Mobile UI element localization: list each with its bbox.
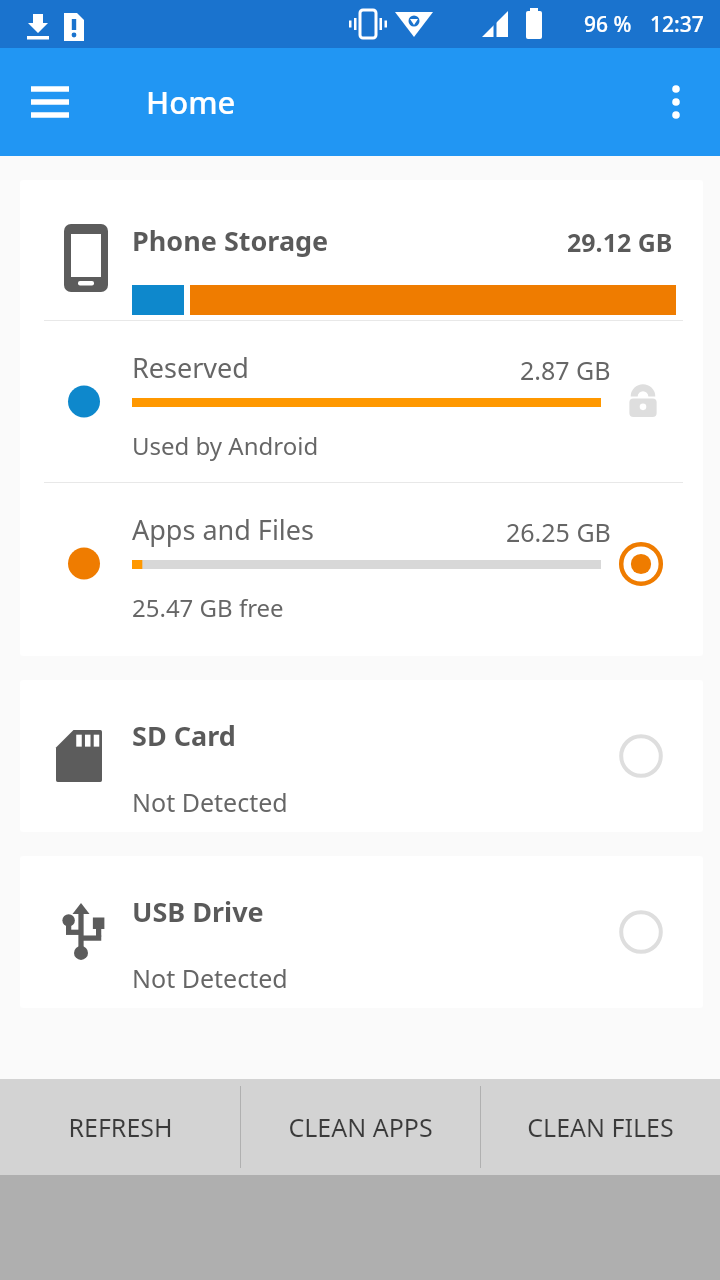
button[interactable]: Phone Storage: [20, 180, 703, 320]
staticText: 96 %: [584, 10, 632, 39]
button[interactable]: Apps and Files selected: [613, 536, 669, 592]
button[interactable]: Select USB Drive: [613, 904, 669, 960]
staticText: 26.25 GB: [506, 515, 611, 549]
button[interactable]: Open navigation menu: [22, 74, 78, 130]
staticText: USB Drive: [132, 893, 264, 930]
staticText: 2.87 GB: [520, 353, 611, 387]
staticText: CLEAN FILES: [527, 1110, 674, 1144]
staticText: Phone Storage: [132, 222, 329, 259]
button[interactable]: Select SD Card: [613, 728, 669, 784]
staticText: Not Detected: [132, 961, 288, 995]
staticText: SD Card: [132, 717, 236, 754]
staticText: Not Detected: [132, 785, 288, 819]
staticText: Home: [146, 81, 236, 123]
button[interactable]: Reserved storage is locked: [617, 376, 669, 428]
button[interactable]: CLEAN FILES: [481, 1079, 720, 1175]
button[interactable]: REFRESH: [0, 1079, 240, 1175]
staticText: Apps and Files: [132, 511, 314, 548]
button[interactable]: Reserved: [20, 321, 703, 482]
staticText: Used by Android: [132, 429, 319, 462]
staticText: 12:37: [650, 10, 704, 39]
button[interactable]: More options: [648, 74, 704, 130]
staticText: Reserved: [132, 349, 249, 386]
staticText: CLEAN APPS: [288, 1110, 433, 1144]
staticText: 25.47 GB free: [132, 591, 284, 624]
staticText: 29.12 GB: [567, 225, 673, 259]
button[interactable]: SD Card: [20, 680, 703, 832]
button[interactable]: Apps and Files: [20, 483, 703, 644]
button[interactable]: USB Drive: [20, 856, 703, 1008]
button[interactable]: CLEAN APPS: [241, 1079, 480, 1175]
staticText: REFRESH: [68, 1110, 173, 1144]
